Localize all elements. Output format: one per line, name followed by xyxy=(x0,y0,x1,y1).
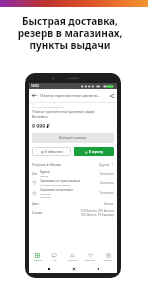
staticText: Курьер xyxy=(40,170,50,174)
staticText: Каталог xyxy=(34,259,42,262)
staticText: АРТИКУЛ: MP002XW0QWER xyxy=(32,105,64,108)
button[interactable]: Получить в: Москва xyxy=(32,160,114,169)
button[interactable]: Курьер xyxy=(32,169,114,178)
staticText: Выберите размер xyxy=(59,136,87,140)
staticText: Самовывоз из пункта выдачи, xyxy=(40,179,82,183)
staticText: Быстрая доставка, резерв в магазинах, пу… xyxy=(0,14,144,52)
button[interactable]: Back xyxy=(93,265,102,273)
button[interactable]: Share xyxy=(106,90,117,101)
staticText: В избранное xyxy=(45,150,63,154)
staticText: Другой xyxy=(99,163,110,167)
button[interactable]: Самовывоз из пункта выдачи, xyxy=(32,178,114,187)
button[interactable]: Избранное xyxy=(81,250,99,265)
staticText: Платье приталенное длинное миди Bonetton xyxy=(32,109,95,119)
staticText: Цвет xyxy=(32,202,39,206)
button[interactable]: В избранное xyxy=(32,147,71,156)
staticText: Белый xyxy=(104,202,114,206)
staticText: В корзину xyxy=(89,150,104,154)
staticText: Бесплатно xyxy=(100,181,114,185)
staticText: завтра xyxy=(40,174,49,177)
staticText: 13:52 xyxy=(31,84,40,88)
staticText: 9 999 ₽ xyxy=(32,122,50,129)
staticText: Самовывоз из магазина xyxy=(40,188,73,192)
button[interactable]: Чаты xyxy=(46,250,63,265)
button[interactable]: Состав xyxy=(32,208,114,218)
staticText: магазина или постамата xyxy=(40,183,70,186)
staticText: Профиль xyxy=(103,259,113,262)
button[interactable]: В корзину xyxy=(74,147,114,156)
button[interactable]: Профиль xyxy=(99,250,117,265)
button[interactable]: Recents xyxy=(44,265,53,273)
staticText: Избранное xyxy=(84,259,96,262)
staticText: Платье приталенное длинно... xyxy=(40,93,106,99)
staticText: Bonetton xyxy=(40,192,51,195)
button[interactable]: Home xyxy=(69,265,78,273)
staticText: Новинки xyxy=(68,259,77,262)
button[interactable]: Самовывоз из магазина xyxy=(32,187,114,199)
staticText: Получить в: Москва xyxy=(32,163,61,167)
staticText: Состав xyxy=(32,211,42,215)
staticText: 55% Вискоза, 30% Вискоза 30% Шерсть, 5% … xyxy=(80,209,114,217)
button[interactable]: Back xyxy=(29,90,40,101)
button[interactable]: Новинки xyxy=(63,250,81,265)
button[interactable]: Каталог xyxy=(29,250,46,265)
staticText: Чаты xyxy=(52,259,58,262)
staticText: Бесплатно xyxy=(100,191,114,195)
staticText: Бесплатно xyxy=(100,172,114,176)
button[interactable]: Выберите размер xyxy=(32,133,114,143)
staticText: Сегодня xyxy=(40,195,51,198)
button[interactable]: Цвет xyxy=(32,199,114,208)
